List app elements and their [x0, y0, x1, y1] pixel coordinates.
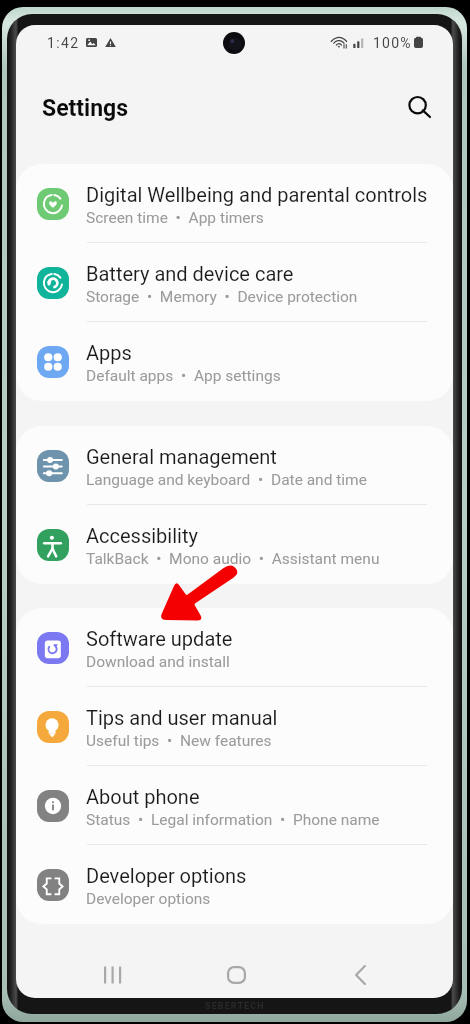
- button[interactable]: Software update: [16, 608, 453, 687]
- button[interactable]: Recent apps: [86, 949, 138, 998]
- button[interactable]: General management: [16, 426, 453, 505]
- staticText: Digital Wellbeing and parental controls: [86, 183, 428, 206]
- staticText: Storage • Memory • Device protection: [86, 288, 358, 306]
- staticText: 100%: [373, 35, 412, 51]
- staticText: 1:42: [47, 35, 80, 51]
- staticText: Status • Legal information • Phone name: [86, 811, 380, 829]
- staticText: Battery and device care: [86, 262, 294, 285]
- staticText: Settings: [42, 95, 129, 122]
- button[interactable]: Accessibility: [16, 505, 453, 584]
- staticText: Download and install: [86, 653, 230, 671]
- staticText: Tips and user manual: [86, 706, 278, 729]
- staticText: Language and keyboard • Date and time: [86, 471, 367, 489]
- staticText: Screen time • App timers: [86, 209, 264, 227]
- button[interactable]: Search: [400, 87, 440, 127]
- staticText: Developer options: [86, 890, 211, 908]
- button[interactable]: Digital Wellbeing and parental controls: [16, 164, 453, 243]
- staticText: Default apps • App settings: [86, 367, 281, 385]
- button[interactable]: Home: [210, 949, 262, 998]
- staticText: SEBERTECH: [205, 1001, 265, 1012]
- staticText: Accessibility: [86, 524, 198, 547]
- button[interactable]: Battery and device care: [16, 243, 453, 322]
- staticText: About phone: [86, 785, 200, 808]
- staticText: TalkBack • Mono audio • Assistant menu: [86, 550, 380, 568]
- staticText: Software update: [86, 627, 233, 650]
- button[interactable]: Tips and user manual: [16, 687, 453, 766]
- staticText: Developer options: [86, 864, 247, 887]
- button[interactable]: Developer options: [16, 845, 453, 924]
- button[interactable]: Apps: [16, 322, 453, 401]
- button[interactable]: About phone: [16, 766, 453, 845]
- staticText: Apps: [86, 341, 132, 364]
- button[interactable]: Back: [334, 949, 386, 998]
- staticText: General management: [86, 445, 277, 468]
- staticText: Useful tips • New features: [86, 732, 272, 750]
